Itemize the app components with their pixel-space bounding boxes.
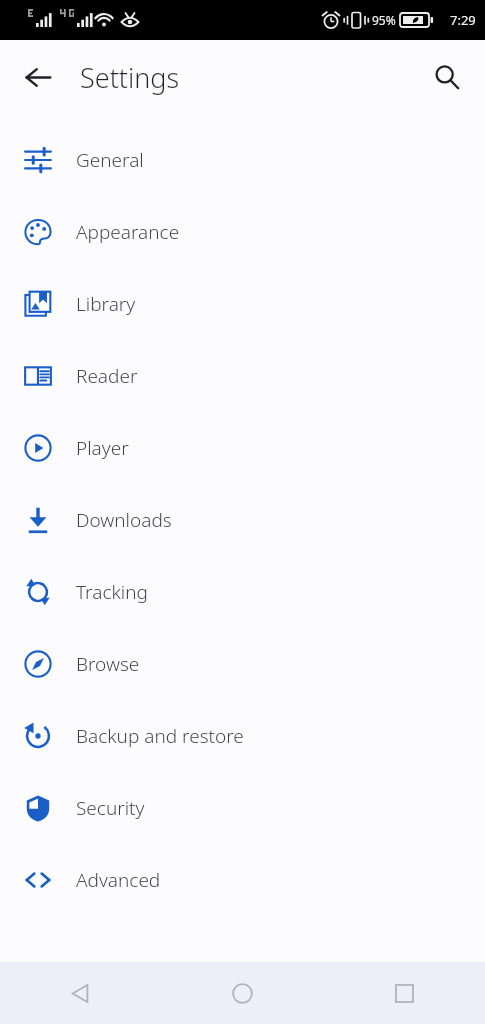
staticText: General: [76, 147, 144, 173]
button[interactable]: General: [0, 124, 485, 196]
button[interactable]: Back: [12, 51, 64, 103]
staticText: 7:29: [450, 11, 476, 29]
staticText: Settings: [80, 59, 180, 96]
button[interactable]: Back: [0, 962, 161, 1024]
staticText: Advanced: [76, 867, 161, 893]
button[interactable]: Home: [161, 962, 323, 1024]
button[interactable]: Library: [0, 268, 485, 340]
staticText: Backup and restore: [76, 723, 244, 749]
button[interactable]: Downloads: [0, 484, 485, 556]
button[interactable]: Advanced: [0, 844, 485, 916]
staticText: Library: [76, 291, 136, 317]
button[interactable]: Browse: [0, 628, 485, 700]
staticText: Downloads: [76, 507, 172, 533]
staticText: Browse: [76, 651, 140, 677]
button[interactable]: Search: [421, 51, 473, 103]
button[interactable]: Tracking: [0, 556, 485, 628]
staticText: Tracking: [76, 579, 148, 605]
button[interactable]: Recent apps: [323, 962, 485, 1024]
button[interactable]: Reader: [0, 340, 485, 412]
button[interactable]: Security: [0, 772, 485, 844]
button[interactable]: Player: [0, 412, 485, 484]
staticText: Security: [76, 795, 145, 821]
button[interactable]: Backup and restore: [0, 700, 485, 772]
staticText: Player: [76, 435, 129, 461]
staticText: Reader: [76, 363, 138, 389]
staticText: Appearance: [76, 219, 180, 245]
staticText: 95%: [372, 12, 396, 28]
button[interactable]: Appearance: [0, 196, 485, 268]
